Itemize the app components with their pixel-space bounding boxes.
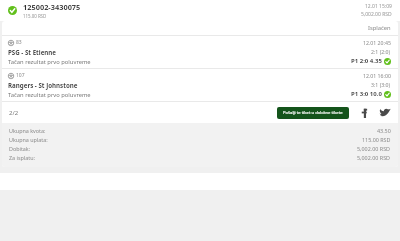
- staticText: Ukupna uplata:: [9, 136, 48, 143]
- button[interactable]: 125002-3430075: [0, 0, 400, 21]
- staticText: 5,002.00 RSD: [361, 11, 392, 18]
- staticText: Za isplatu:: [9, 154, 35, 161]
- staticText: 12.01 16:00: [363, 72, 391, 79]
- staticText: Pošalji te tiket u dobitne tikete: [283, 110, 343, 116]
- staticText: 3:1 (3:0): [371, 81, 391, 88]
- staticText: 115.00 RSD: [23, 13, 47, 19]
- staticText: 115.00 RSD: [362, 136, 391, 143]
- staticText: 5,002.00 RSD: [357, 154, 391, 161]
- staticText: 107: [16, 72, 25, 79]
- staticText: 2:1 (2:0): [371, 48, 391, 55]
- staticText: P1 2:0 4.35: [351, 57, 382, 65]
- staticText: 125002-3430075: [23, 2, 81, 12]
- button[interactable]: 83: [2, 36, 398, 68]
- staticText: 5,002.00 RSD: [357, 145, 391, 152]
- staticText: Tačan rezultat prvo poluvreme: [8, 58, 91, 66]
- staticText: Tačan rezultat prvo poluvreme: [8, 91, 91, 99]
- button[interactable]: Share on Facebook: [358, 106, 371, 119]
- staticText: Ukupna kvota:: [9, 127, 46, 134]
- staticText: 43.50: [377, 127, 391, 134]
- staticText: 12.01 20:45: [363, 39, 391, 46]
- button[interactable]: Pošalji te tiket u dobitne tikete: [277, 107, 349, 119]
- staticText: P1 3:0 10.0: [351, 90, 382, 98]
- staticText: PSG - St Etienne: [8, 48, 57, 56]
- staticText: Isplaćen: [368, 24, 391, 32]
- staticText: Rangers - St Johnstone: [8, 81, 78, 89]
- staticText: Dobitak:: [9, 145, 31, 152]
- button[interactable]: Share on Twitter: [378, 106, 391, 119]
- staticText: 12.01 15:09: [365, 3, 392, 10]
- staticText: 2/2: [9, 109, 19, 117]
- staticText: 83: [16, 39, 22, 46]
- button[interactable]: 107: [2, 69, 398, 101]
